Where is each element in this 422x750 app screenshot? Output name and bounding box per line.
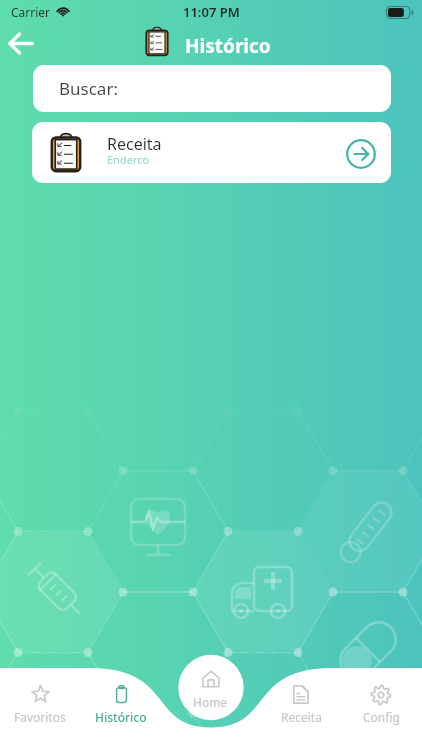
button[interactable]: Histórico (81, 678, 161, 730)
staticText: Histórico (185, 33, 271, 59)
staticText: Receita (107, 133, 162, 155)
staticText: 11:07 PM (183, 3, 240, 21)
staticText: Buscar: (59, 77, 118, 100)
staticText: Receita (281, 709, 322, 725)
staticText: Config (363, 709, 400, 725)
button[interactable]: Favoritos (0, 678, 80, 730)
staticText: Carrier (11, 4, 51, 20)
staticText: Enderco (107, 152, 150, 167)
staticText: Home (193, 694, 228, 710)
button[interactable]: Buscar: (33, 65, 391, 112)
button[interactable]: Receita (32, 122, 391, 183)
button[interactable]: Receita (261, 678, 341, 730)
button[interactable]: Config (341, 678, 421, 730)
staticText: Histórico (95, 709, 147, 725)
button[interactable]: Back (0, 22, 42, 64)
button[interactable]: Home (178, 655, 243, 720)
staticText: Favoritos (14, 709, 66, 725)
button[interactable]: Abrir receita (341, 134, 380, 173)
